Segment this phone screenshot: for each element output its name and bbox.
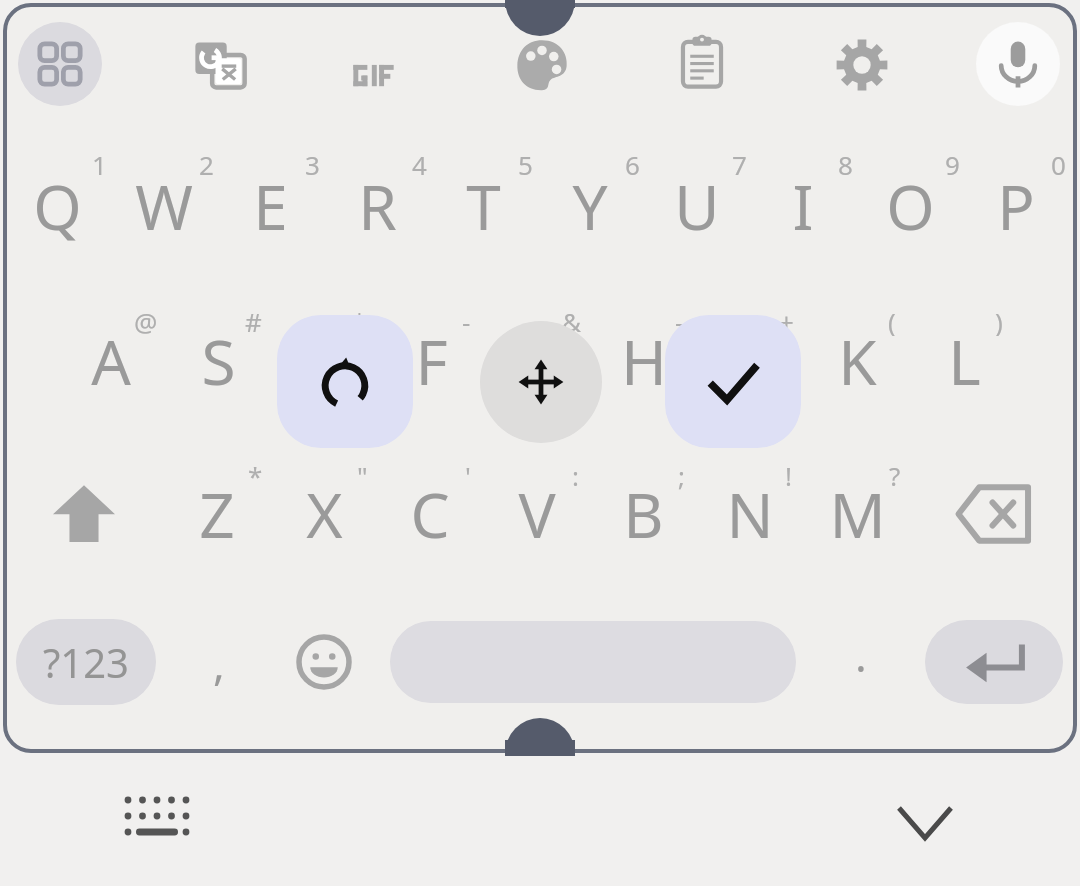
staticText: Z (199, 472, 235, 556)
button[interactable]: E (210, 159, 330, 252)
staticText: P (997, 164, 1035, 248)
button[interactable]: D (264, 314, 384, 407)
staticText: C (410, 472, 450, 556)
button[interactable]: W (104, 159, 224, 252)
button[interactable]: N (690, 467, 810, 560)
staticText: I (792, 164, 814, 248)
button[interactable]: B (583, 467, 703, 560)
button[interactable]: V (477, 467, 597, 560)
button[interactable]: X (264, 467, 384, 560)
staticText: . (855, 625, 867, 685)
staticText: & (562, 304, 582, 336)
button[interactable]: H (584, 314, 704, 407)
staticText: 5 (518, 147, 533, 179)
staticText: ' (465, 458, 471, 490)
staticText: 9 (945, 147, 960, 179)
staticText: " (357, 458, 368, 490)
button[interactable]: F (371, 314, 491, 407)
button[interactable]: GIF (348, 45, 408, 105)
staticText: ( (888, 304, 896, 336)
staticText: E (253, 164, 288, 248)
staticText: * (248, 458, 263, 490)
staticText: G (514, 319, 560, 403)
button[interactable]: Apps (18, 22, 102, 106)
button[interactable]: Enter (925, 620, 1063, 704)
staticText: ! (785, 458, 792, 490)
button[interactable]: M (797, 467, 917, 560)
button[interactable]: G (477, 314, 597, 407)
button[interactable]: T (423, 159, 543, 252)
button[interactable]: C (370, 467, 490, 560)
staticText: L (948, 319, 981, 403)
staticText: 6 (625, 147, 640, 179)
staticText: @ (134, 304, 158, 336)
staticText: 8 (838, 147, 853, 179)
button[interactable]: Q (0, 159, 117, 252)
button[interactable]: I (743, 159, 863, 252)
button[interactable]: U (637, 159, 757, 252)
button[interactable]: R (317, 159, 437, 252)
staticText: V (518, 472, 556, 556)
staticText: : (572, 458, 579, 490)
staticText: S (201, 319, 236, 403)
staticText: - (462, 304, 471, 336)
button[interactable]: . (801, 622, 921, 688)
button[interactable]: Hide keyboard (885, 790, 965, 854)
button[interactable]: Translate (190, 35, 250, 95)
staticText: H (621, 319, 667, 403)
staticText: B (623, 472, 664, 556)
button[interactable]: Rotate (277, 315, 413, 448)
staticText: U (674, 164, 720, 248)
staticText: 1 (92, 147, 107, 179)
staticText: K (838, 319, 877, 403)
button[interactable]: Move (480, 321, 602, 443)
staticText: , (213, 633, 225, 693)
staticText: N (726, 472, 774, 556)
button[interactable]: Settings (832, 35, 892, 95)
button[interactable]: Switch keyboard (120, 790, 202, 852)
button[interactable]: Voice input (976, 22, 1060, 106)
staticText: - (675, 304, 684, 336)
button[interactable]: P (956, 159, 1076, 252)
staticText: F (415, 319, 448, 403)
button[interactable]: S (158, 314, 278, 407)
button[interactable]: Clipboard (672, 32, 732, 92)
button[interactable]: A (51, 314, 171, 407)
button[interactable]: Z (157, 467, 277, 560)
button[interactable]: ?123 (16, 619, 156, 705)
button[interactable]: Done (665, 315, 801, 448)
staticText: X (306, 472, 343, 556)
button[interactable]: J (691, 314, 811, 407)
button[interactable]: Y (530, 159, 650, 252)
staticText: ; (678, 458, 685, 490)
staticText: ?123 (43, 635, 129, 689)
staticText: + (779, 304, 794, 336)
button[interactable]: , (159, 630, 279, 696)
staticText: M (829, 472, 886, 556)
button[interactable]: Emoji (284, 622, 364, 702)
staticText: 7 (732, 147, 747, 179)
button[interactable]: Themes (512, 35, 572, 95)
staticText: # (245, 304, 262, 336)
staticText: 4 (412, 147, 427, 179)
staticText: O (886, 164, 935, 248)
staticText: Q (33, 164, 82, 248)
button[interactable]: Shift (30, 465, 138, 561)
button[interactable]: L (904, 314, 1024, 407)
staticText: 2 (199, 147, 214, 179)
staticText: R (358, 164, 397, 248)
staticText: ? (889, 458, 901, 490)
staticText: 0 (1051, 147, 1066, 179)
staticText: $ (352, 304, 367, 336)
staticText: D (301, 319, 347, 403)
button[interactable]: Backspace (938, 468, 1050, 560)
staticText: J (743, 319, 760, 403)
staticText: ) (995, 304, 1003, 336)
button[interactable]: K (797, 314, 917, 407)
staticText: Y (572, 164, 608, 248)
button[interactable]: Space (390, 621, 796, 703)
staticText: T (466, 164, 501, 248)
staticText: W (135, 164, 193, 248)
staticText: 3 (305, 147, 320, 179)
button[interactable]: O (850, 159, 970, 252)
